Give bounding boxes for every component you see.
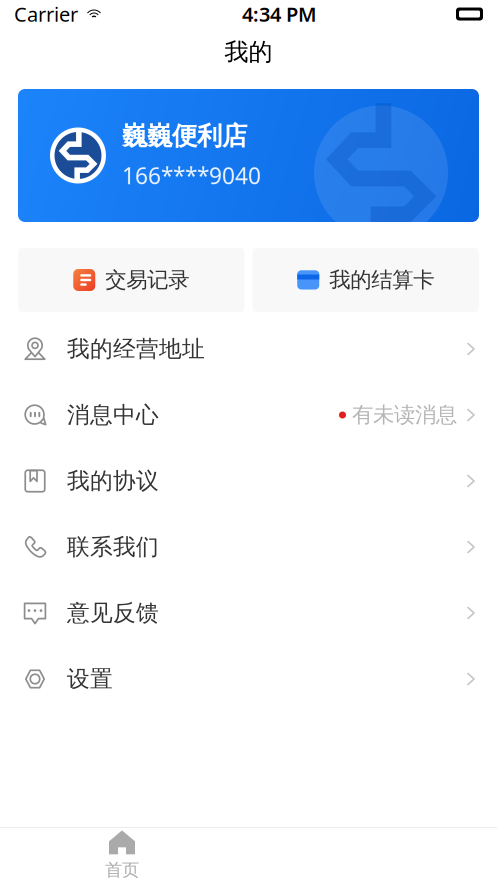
staticText: 巍巍便利店 (122, 120, 247, 151)
button[interactable]: 联系我们 (0, 514, 497, 580)
staticText: 有未读消息 (352, 402, 457, 428)
staticText: 首页 (105, 859, 139, 881)
staticText: 我的经营地址 (67, 335, 205, 363)
staticText: 消息中心 (67, 401, 159, 429)
staticText: 4:34 PM (242, 1, 317, 27)
button[interactable]: 我的经营地址 (0, 316, 497, 382)
button[interactable]: 首页 (60, 823, 184, 883)
staticText: 交易记录 (105, 267, 189, 293)
button[interactable]: 交易记录 (18, 248, 244, 312)
staticText: 我的协议 (67, 467, 159, 495)
staticText: 意见反馈 (67, 599, 159, 627)
button[interactable]: 我的协议 (0, 448, 497, 514)
button[interactable]: 我的结算卡 (252, 248, 479, 312)
staticText: 166****9040 (122, 160, 261, 191)
staticText: Carrier (14, 1, 78, 27)
button[interactable]: 设置 (0, 646, 497, 712)
staticText: 我的 (224, 37, 272, 67)
staticText: 设置 (67, 665, 113, 693)
staticText: 我的结算卡 (329, 267, 434, 293)
staticText: 联系我们 (67, 533, 159, 561)
button[interactable]: 意见反馈 (0, 580, 497, 646)
button[interactable]: 消息中心 (0, 382, 497, 448)
